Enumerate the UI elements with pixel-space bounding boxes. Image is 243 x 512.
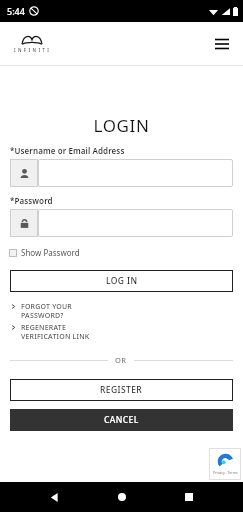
staticText: Show Password — [21, 247, 80, 258]
button[interactable]: CANCEL — [10, 409, 233, 431]
staticText: I N F I N I T I — [14, 47, 50, 53]
button[interactable]: Back — [41, 484, 67, 510]
button[interactable]: REGENERATE VERIFICATION LINK — [10, 323, 90, 341]
button[interactable]: Home — [109, 484, 135, 510]
button[interactable]: FORGOT YOUR PASSWORD? — [10, 302, 72, 320]
button[interactable]: reCAPTCHA privacy and terms — [209, 448, 241, 480]
staticText: FORGOT YOUR PASSWORD? — [21, 302, 72, 320]
staticText: LOG IN — [106, 275, 138, 287]
staticText: REGISTER — [100, 384, 143, 396]
staticText: CANCEL — [104, 414, 139, 426]
staticText: *Password — [10, 195, 53, 206]
staticText: OR — [115, 355, 127, 365]
staticText: REGENERATE VERIFICATION LINK — [21, 323, 90, 341]
staticText: 5:44 — [7, 5, 25, 17]
staticText: LOGIN — [0, 114, 243, 137]
button[interactable]: Show Password — [9, 247, 80, 258]
button[interactable]: Menu — [209, 31, 235, 57]
staticText: Privacy - Terms — [213, 470, 238, 475]
button[interactable]: Password field — [38, 209, 233, 237]
button[interactable]: REGISTER — [10, 379, 233, 401]
button[interactable]: Recent apps — [176, 484, 202, 510]
button[interactable]: Username field — [38, 159, 233, 187]
staticText: *Username or Email Address — [10, 145, 125, 156]
button[interactable]: LOG IN — [10, 270, 233, 292]
